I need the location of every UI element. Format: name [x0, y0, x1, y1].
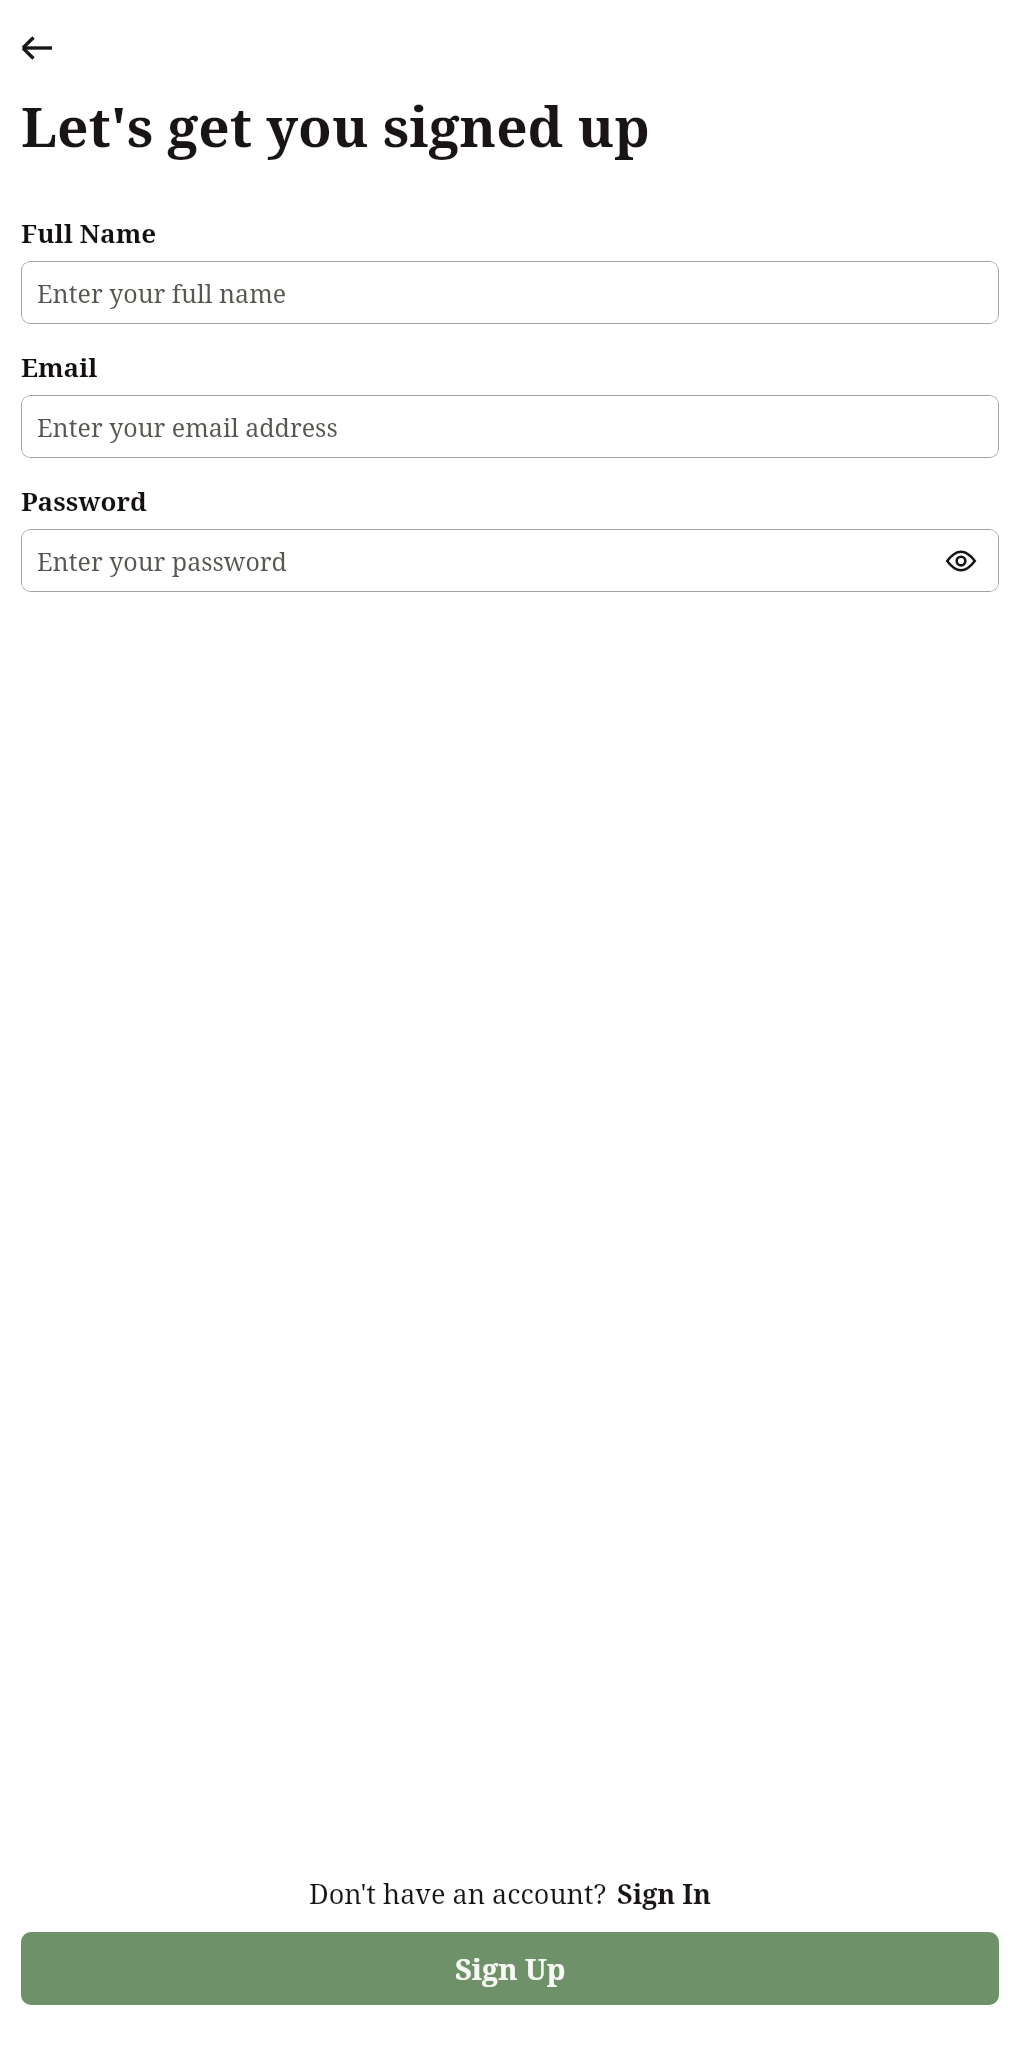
staticText: Email: [21, 349, 98, 384]
staticText: Let's get you signed up: [21, 88, 650, 163]
staticText: Sign Up: [455, 1949, 566, 1988]
button[interactable]: Back: [21, 22, 73, 74]
button[interactable]: Sign In: [617, 1875, 712, 1912]
staticText: Enter your full name: [37, 276, 287, 310]
button[interactable]: Sign Up: [21, 1932, 999, 2005]
staticText: Full Name: [21, 215, 157, 250]
staticText: Don't have an account?: [309, 1875, 607, 1912]
button[interactable]: Enter your full name: [21, 261, 999, 324]
staticText: Sign In: [617, 1875, 712, 1912]
staticText: Enter your email address: [37, 410, 338, 444]
staticText: Enter your password: [37, 544, 287, 578]
button[interactable]: Enter your password: [21, 529, 999, 592]
button[interactable]: Enter your email address: [21, 395, 999, 458]
button[interactable]: Show password: [939, 539, 983, 583]
staticText: Password: [21, 483, 147, 518]
